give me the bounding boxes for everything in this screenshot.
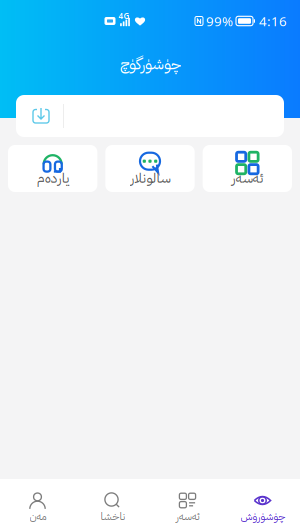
staticText: ناخشا: [100, 508, 125, 524]
button[interactable]: مەن: [0, 479, 75, 532]
staticText: ياردەم: [36, 167, 69, 188]
staticText: 4:16: [259, 12, 287, 30]
staticText: سالونلار: [130, 167, 170, 188]
staticText: 99%: [206, 12, 233, 30]
button[interactable]: ياردەم: [8, 145, 97, 192]
staticText: 4G: [118, 11, 129, 21]
button[interactable]: ناخشا: [75, 479, 150, 532]
staticText: چۈشۈرگۈچ: [119, 52, 180, 76]
button[interactable]: چۈشۈرۈش: [225, 479, 300, 532]
staticText: چۈشۈرۈش: [240, 508, 285, 524]
button[interactable]: Download: [16, 95, 63, 137]
button[interactable]: سالونلار: [105, 145, 195, 192]
staticText: ئەسەر: [231, 167, 263, 188]
staticText: ئەسەر: [175, 508, 199, 524]
button[interactable]: ئەسەر: [150, 479, 225, 532]
button[interactable]: ئەسەر: [203, 145, 292, 192]
staticText: مەن: [29, 508, 46, 524]
